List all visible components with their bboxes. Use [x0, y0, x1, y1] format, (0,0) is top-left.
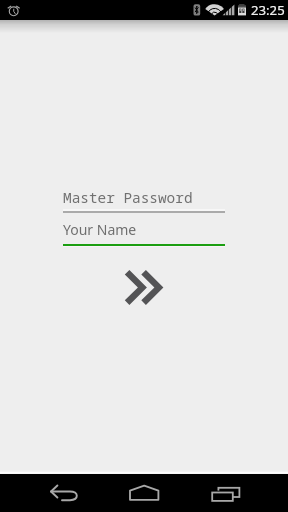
- button[interactable]: Recent apps: [204, 474, 244, 512]
- button[interactable]: Back: [44, 474, 84, 512]
- staticText: Master Password: [63, 188, 193, 208]
- button[interactable]: Your Name: [63, 216, 225, 244]
- staticText: 23:25: [251, 1, 285, 19]
- staticText: Your Name: [63, 220, 137, 239]
- button[interactable]: Home: [124, 474, 164, 512]
- button[interactable]: Continue: [118, 264, 170, 310]
- button[interactable]: Master Password: [63, 184, 225, 214]
